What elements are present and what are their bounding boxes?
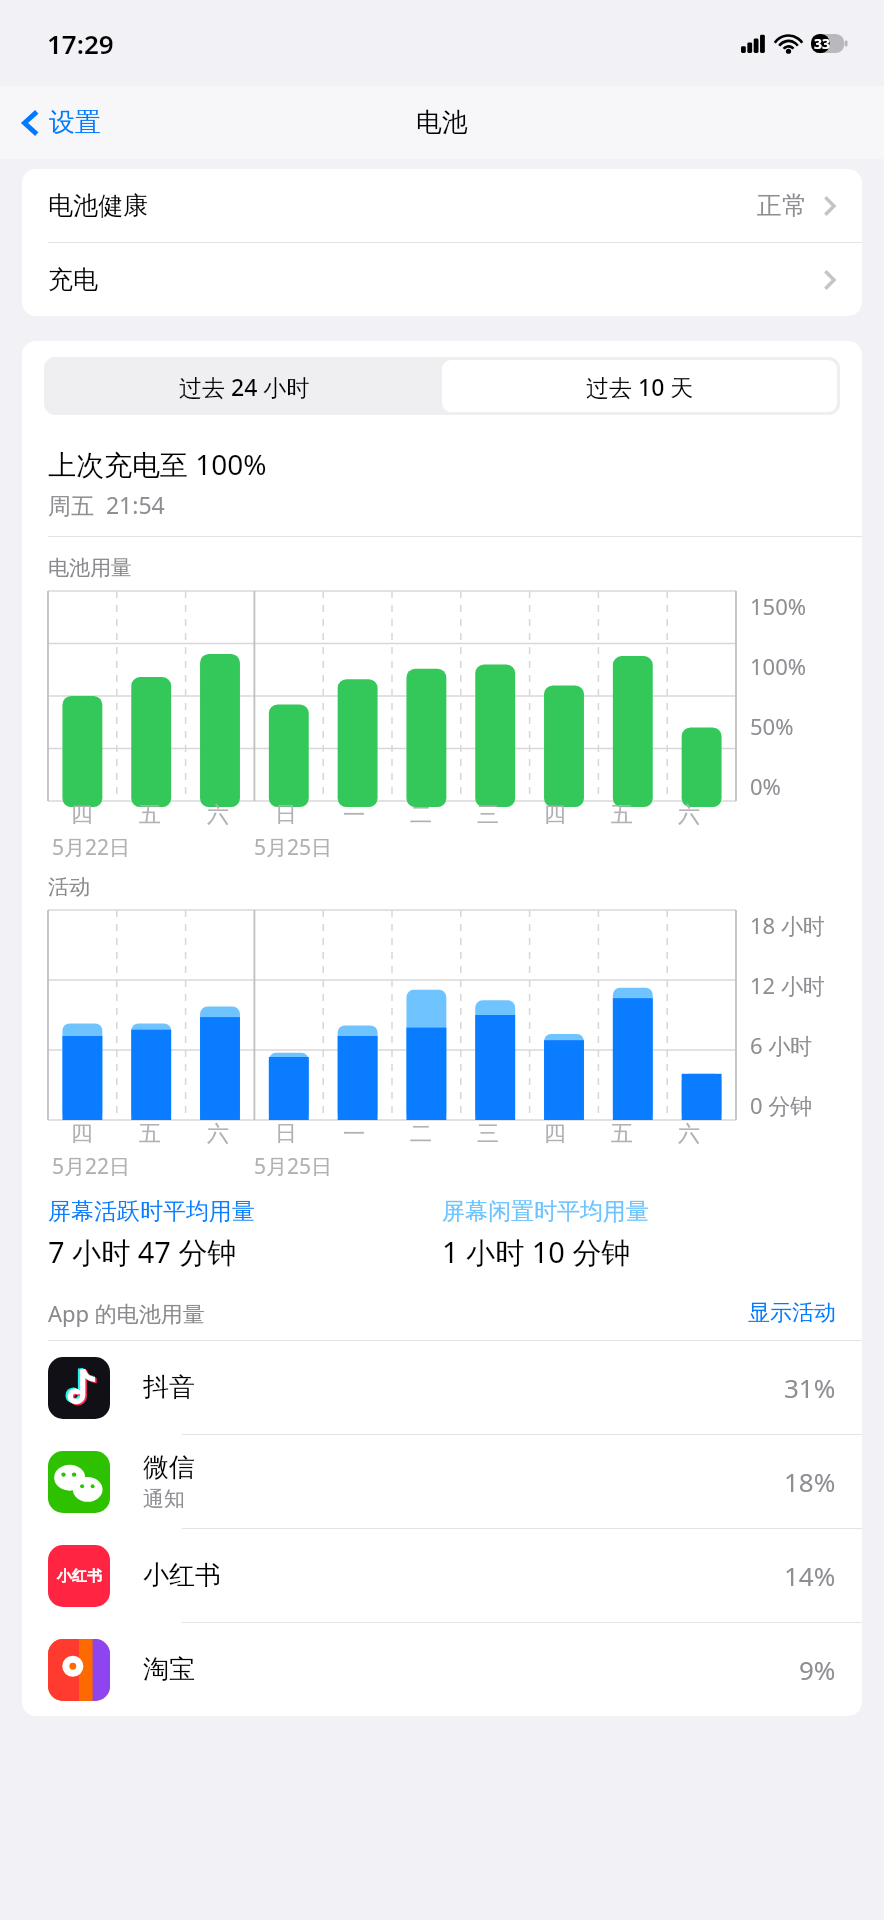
staticText: 过去 24 小时	[179, 371, 310, 402]
staticText: 小红书	[57, 1567, 102, 1586]
staticText: 1 小时 10 分钟	[442, 1232, 631, 1272]
staticText: 5月22日	[52, 1152, 131, 1181]
staticText: 33	[814, 34, 831, 53]
button[interactable]: 淘宝	[22, 1623, 862, 1716]
staticText: 淘宝	[143, 1653, 195, 1686]
staticText: 日	[275, 801, 297, 829]
staticText: 屏幕闲置时平均用量	[442, 1197, 649, 1226]
staticText: 14%	[784, 1558, 836, 1593]
staticText: 正常	[757, 190, 807, 221]
staticText: 六	[207, 1120, 229, 1148]
staticText: 6 小时	[750, 1030, 813, 1060]
staticText: 100%	[750, 651, 807, 681]
staticText: 显示活动	[748, 1299, 836, 1327]
staticText: 日	[275, 1120, 297, 1148]
other: Back	[22, 108, 40, 138]
staticText: 9%	[799, 1652, 836, 1687]
staticText: 50%	[750, 711, 794, 741]
button[interactable]: 过去 10 天	[442, 360, 837, 412]
staticText: 充电	[48, 264, 98, 295]
staticText: App 的电池用量	[48, 1298, 205, 1328]
staticText: 5月25日	[254, 833, 333, 862]
staticText: 17:29	[47, 26, 114, 61]
staticText: 电池	[416, 106, 468, 139]
staticText: 0 分钟	[750, 1090, 813, 1120]
staticText: 一	[343, 801, 365, 829]
staticText: 五	[139, 801, 161, 829]
staticText: 抖音	[143, 1371, 195, 1404]
staticText: 设置	[49, 106, 101, 139]
staticText: 0%	[750, 771, 781, 801]
staticText: 周五 21:54	[48, 489, 165, 520]
button[interactable]: 电池健康	[22, 169, 862, 242]
staticText: 18 小时	[750, 910, 825, 940]
staticText: 活动	[48, 874, 90, 900]
staticText: 上次充电至 100%	[48, 445, 267, 483]
staticText: 12 小时	[750, 970, 825, 1000]
staticText: 六	[678, 801, 700, 829]
button[interactable]: 小红书	[22, 1529, 862, 1622]
staticText: 二	[410, 1120, 432, 1148]
staticText: 一	[343, 1120, 365, 1148]
staticText: 7 小时 47 分钟	[48, 1232, 237, 1272]
staticText: 五	[139, 1120, 161, 1148]
staticText: 通知	[143, 1486, 185, 1512]
staticText: 5月22日	[52, 833, 131, 862]
staticText: 微信	[143, 1451, 195, 1484]
button[interactable]: Back	[22, 106, 101, 139]
staticText: 屏幕活跃时平均用量	[48, 1197, 255, 1226]
staticText: 过去 10 天	[586, 371, 694, 402]
staticText: 电池用量	[48, 555, 132, 581]
button[interactable]: 微信	[22, 1435, 862, 1528]
staticText: 四	[544, 801, 566, 829]
button[interactable]: 显示活动	[748, 1299, 836, 1327]
staticText: 三	[477, 1120, 499, 1148]
staticText: 四	[71, 1120, 93, 1148]
staticText: 18%	[784, 1464, 836, 1499]
button[interactable]: 过去 24 小时	[47, 360, 442, 412]
staticText: 31%	[784, 1370, 836, 1405]
staticText: 四	[71, 801, 93, 829]
staticText: 小红书	[143, 1559, 221, 1592]
staticText: 5月25日	[254, 1152, 333, 1181]
staticText: 五	[611, 801, 633, 829]
staticText: 五	[611, 1120, 633, 1148]
staticText: 三	[477, 801, 499, 829]
button[interactable]: 充电	[22, 243, 862, 316]
staticText: 150%	[750, 591, 807, 621]
staticText: 电池健康	[48, 190, 148, 221]
staticText: 四	[544, 1120, 566, 1148]
staticText: 二	[410, 801, 432, 829]
staticText: 六	[678, 1120, 700, 1148]
button[interactable]: 抖音	[22, 1341, 862, 1434]
staticText: 六	[207, 801, 229, 829]
